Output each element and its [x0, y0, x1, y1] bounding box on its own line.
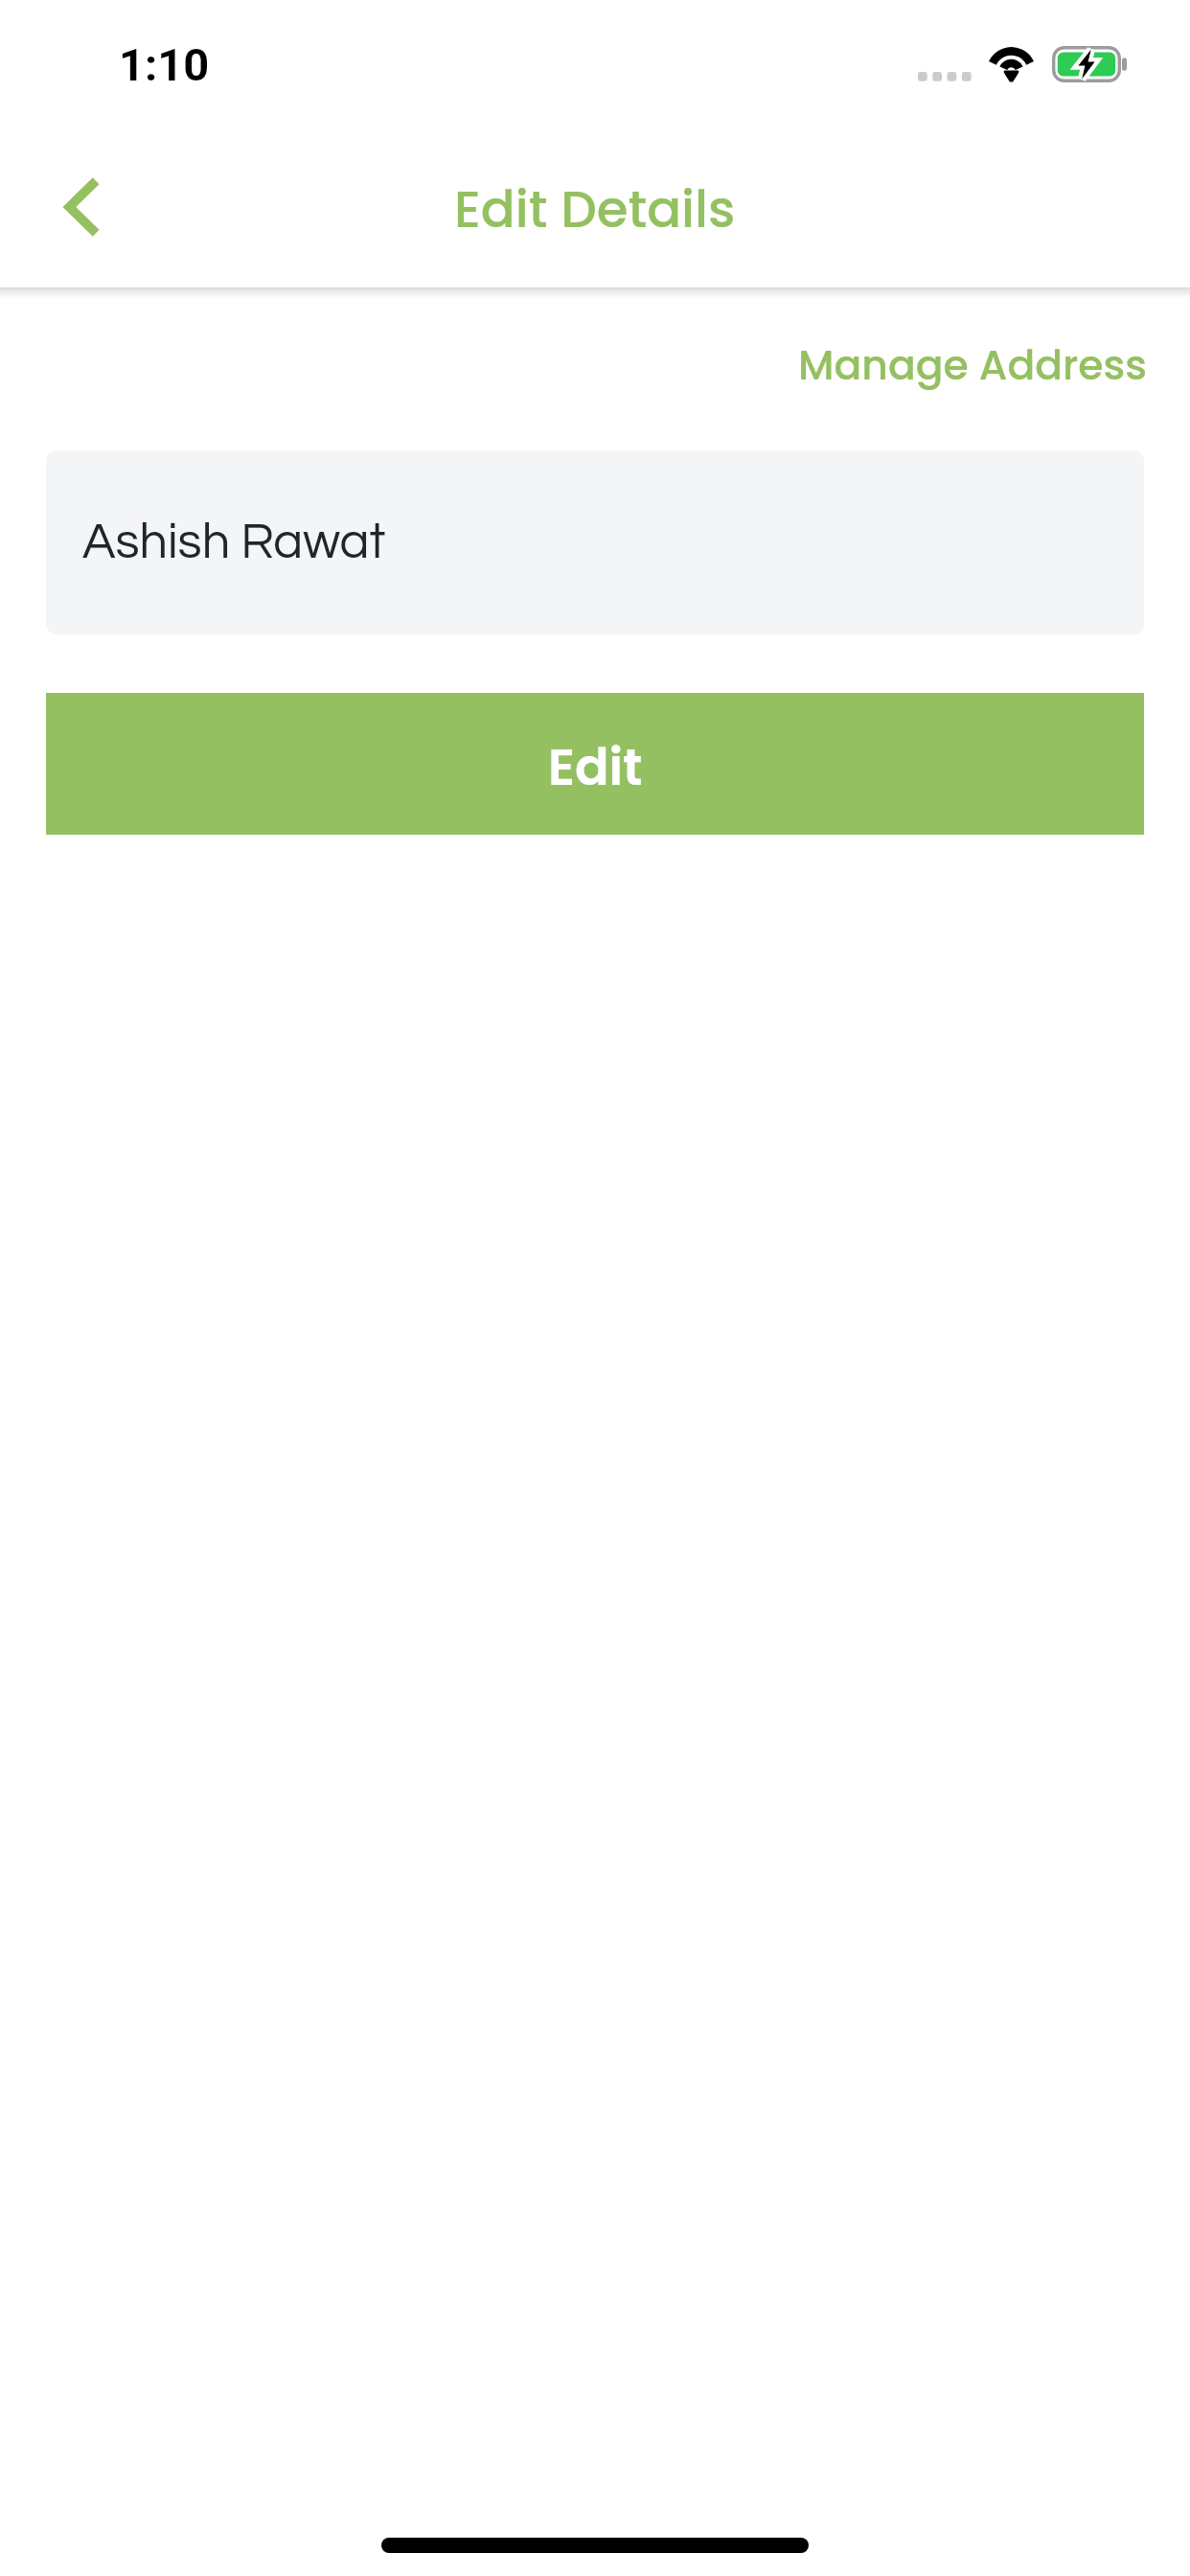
staticText: Edit Details	[454, 173, 736, 244]
staticText: Ashish Rawat	[82, 517, 386, 568]
staticText: 1:10	[119, 38, 210, 91]
staticText: Edit	[548, 732, 643, 802]
button[interactable]: Back	[34, 160, 128, 254]
staticText: Manage Address	[798, 336, 1147, 393]
button[interactable]: Ashish Rawat	[46, 450, 1144, 634]
button[interactable]: Edit	[46, 693, 1144, 835]
button[interactable]: Manage Address	[783, 317, 1162, 412]
